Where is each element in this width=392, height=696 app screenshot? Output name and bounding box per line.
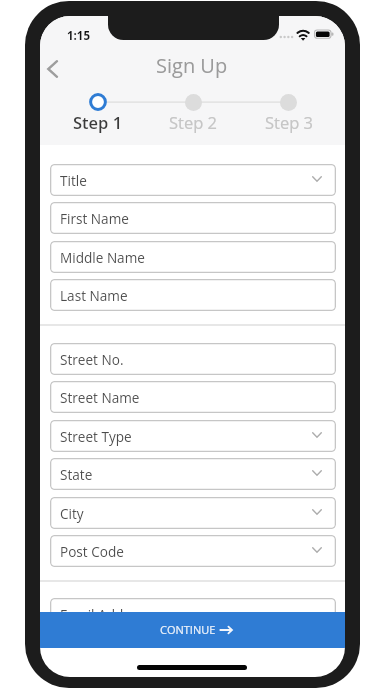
staticText: Street Name	[60, 388, 140, 407]
button[interactable]: Step 2	[153, 111, 233, 133]
button[interactable]: Email Address	[50, 598, 336, 630]
button[interactable]: Street No.	[50, 343, 336, 375]
staticText: Street Type	[60, 427, 132, 446]
staticText: Street No.	[60, 350, 124, 369]
staticText: State	[60, 465, 93, 484]
button[interactable]: Step 3	[249, 111, 329, 133]
button[interactable]: Title	[50, 164, 336, 196]
button[interactable]: State	[50, 458, 336, 490]
button[interactable]: Post Code	[50, 535, 336, 567]
staticText: Post Code	[60, 542, 124, 561]
button[interactable]: Street Type	[50, 420, 336, 452]
staticText: Last Name	[60, 286, 128, 305]
staticText: 1:15	[67, 28, 91, 44]
staticText: Title	[60, 171, 87, 190]
button[interactable]: Last Name	[50, 279, 336, 311]
button[interactable]: CONTINUE	[40, 612, 345, 648]
staticText: Email Address	[60, 605, 150, 624]
button[interactable]: Back	[40, 52, 69, 86]
staticText: Middle Name	[60, 248, 145, 267]
staticText: Step 1	[73, 111, 123, 133]
button[interactable]: Step 1	[58, 111, 138, 133]
staticText: First Name	[60, 209, 129, 228]
staticText: Step 3	[265, 111, 314, 133]
staticText: Sign Up	[156, 52, 228, 78]
staticText: Step 2	[169, 111, 218, 133]
button[interactable]: City	[50, 497, 336, 529]
staticText: City	[60, 504, 84, 523]
button[interactable]: Middle Name	[50, 241, 336, 273]
staticText: CONTINUE	[160, 622, 216, 637]
button[interactable]: First Name	[50, 202, 336, 234]
button[interactable]: Street Name	[50, 381, 336, 413]
